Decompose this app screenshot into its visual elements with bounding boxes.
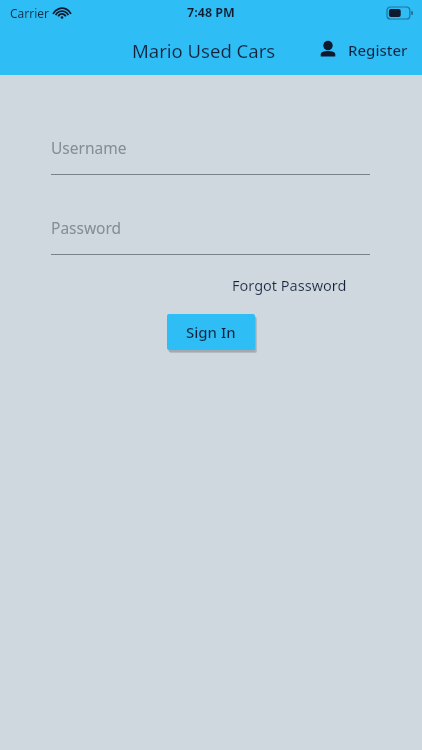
staticText: Register [348, 40, 408, 60]
staticText: Username [51, 137, 127, 158]
button[interactable]: Sign In [167, 314, 255, 350]
staticText: Forgot Password [232, 275, 347, 295]
staticText: Carrier [10, 5, 50, 21]
staticText: 7:48 PM [187, 4, 235, 21]
button[interactable]: Forgot Password [228, 271, 351, 299]
other: Register account [317, 39, 339, 61]
staticText: Sign In [186, 322, 236, 342]
staticText: Mario Used Cars [132, 38, 276, 63]
button[interactable]: Register account [317, 39, 408, 61]
staticText: Password [51, 217, 122, 238]
